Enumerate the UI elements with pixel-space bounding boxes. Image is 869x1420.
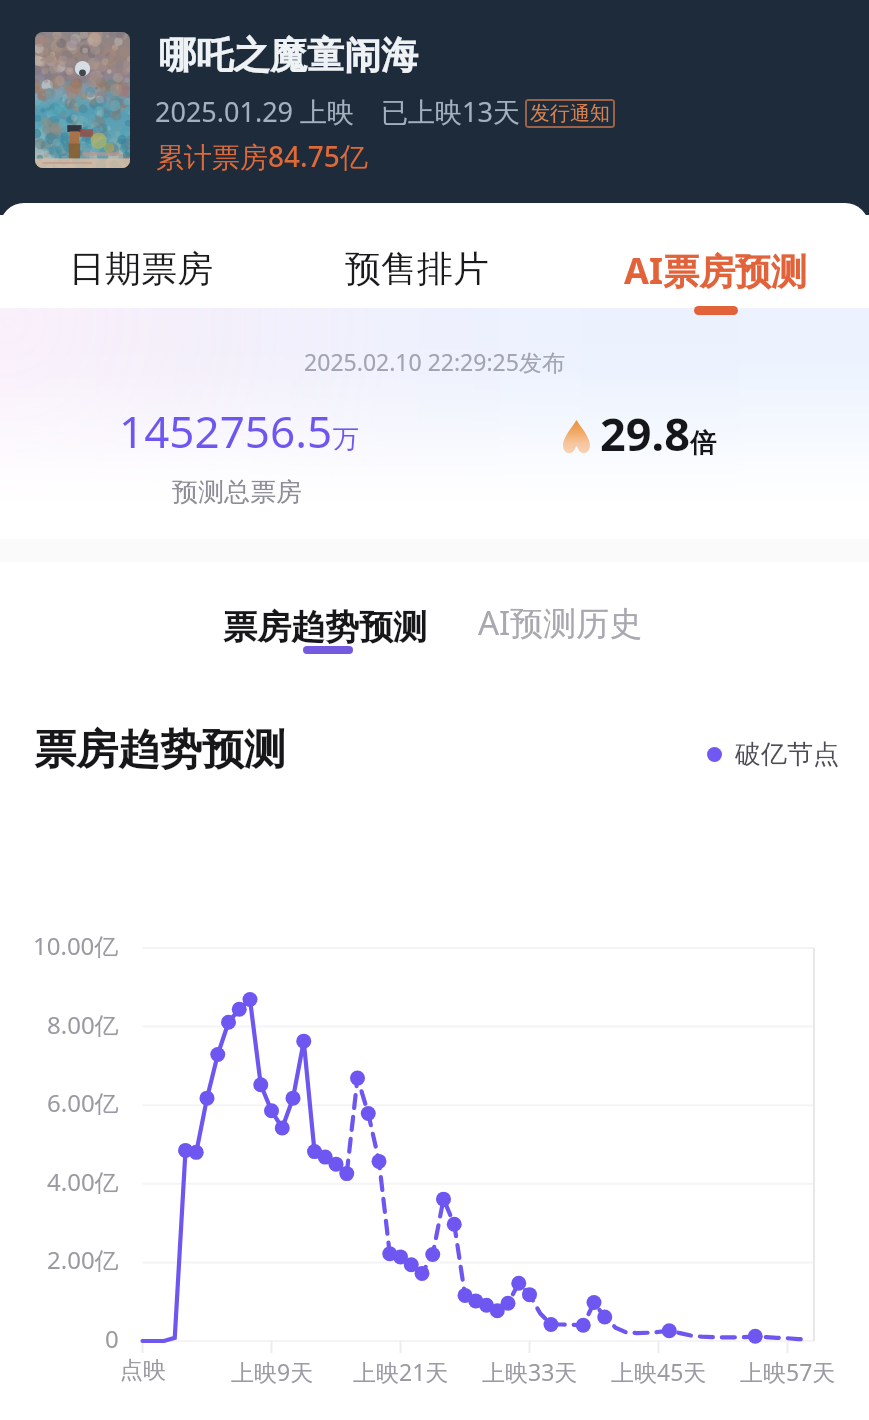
staticText: 0: [105, 1322, 119, 1354]
staticText: 累计票房84.75亿: [156, 137, 368, 175]
staticText: 票房趋势预测: [223, 606, 427, 649]
staticText: 预售排片: [345, 246, 489, 291]
staticText: 2.00亿: [47, 1243, 119, 1275]
staticText: 6.00亿: [47, 1086, 119, 1118]
button[interactable]: AI预测历史: [478, 600, 643, 645]
staticText: 预测总票房: [172, 476, 302, 509]
staticText: 万: [333, 423, 359, 456]
staticText: 4.00亿: [47, 1165, 119, 1197]
staticText: 2025.01.29 上映: [155, 93, 355, 130]
staticText: AI预测历史: [478, 600, 643, 645]
button[interactable]: 哪吒之魔童闹海 影片详情: [0, 0, 869, 200]
staticText: 上映21天: [353, 1356, 449, 1387]
staticText: 8.00亿: [47, 1008, 119, 1040]
button[interactable]: 日期票房: [66, 246, 216, 326]
staticText: 10.00亿: [33, 929, 119, 961]
staticText: 哪吒之魔童闹海: [159, 32, 418, 79]
staticText: 倍: [690, 427, 716, 460]
staticText: 2025.02.10 22:29:25发布: [0, 346, 869, 377]
staticText: 上映33天: [482, 1356, 578, 1387]
staticText: 点映: [120, 1356, 166, 1385]
staticText: 日期票房: [69, 246, 213, 291]
staticText: 破亿节点: [735, 738, 839, 771]
staticText: 发行通知: [530, 101, 610, 126]
button[interactable]: 预售排片: [342, 246, 492, 326]
button[interactable]: 影片海报: [35, 32, 130, 168]
button[interactable]: AI票房预测: [620, 246, 810, 326]
staticText: 上映9天: [231, 1356, 314, 1387]
staticText: 上映45天: [611, 1356, 707, 1387]
staticText: 29.8: [600, 403, 690, 464]
staticText: 1452756.5: [119, 401, 333, 461]
staticText: AI票房预测: [624, 246, 807, 295]
staticText: 上映57天: [740, 1356, 836, 1387]
staticText: 票房趋势预测: [34, 724, 286, 777]
button[interactable]: 票房趋势预测: [223, 606, 427, 657]
staticText: 已上映13天: [381, 93, 520, 130]
button[interactable]: 发行通知: [525, 99, 615, 128]
